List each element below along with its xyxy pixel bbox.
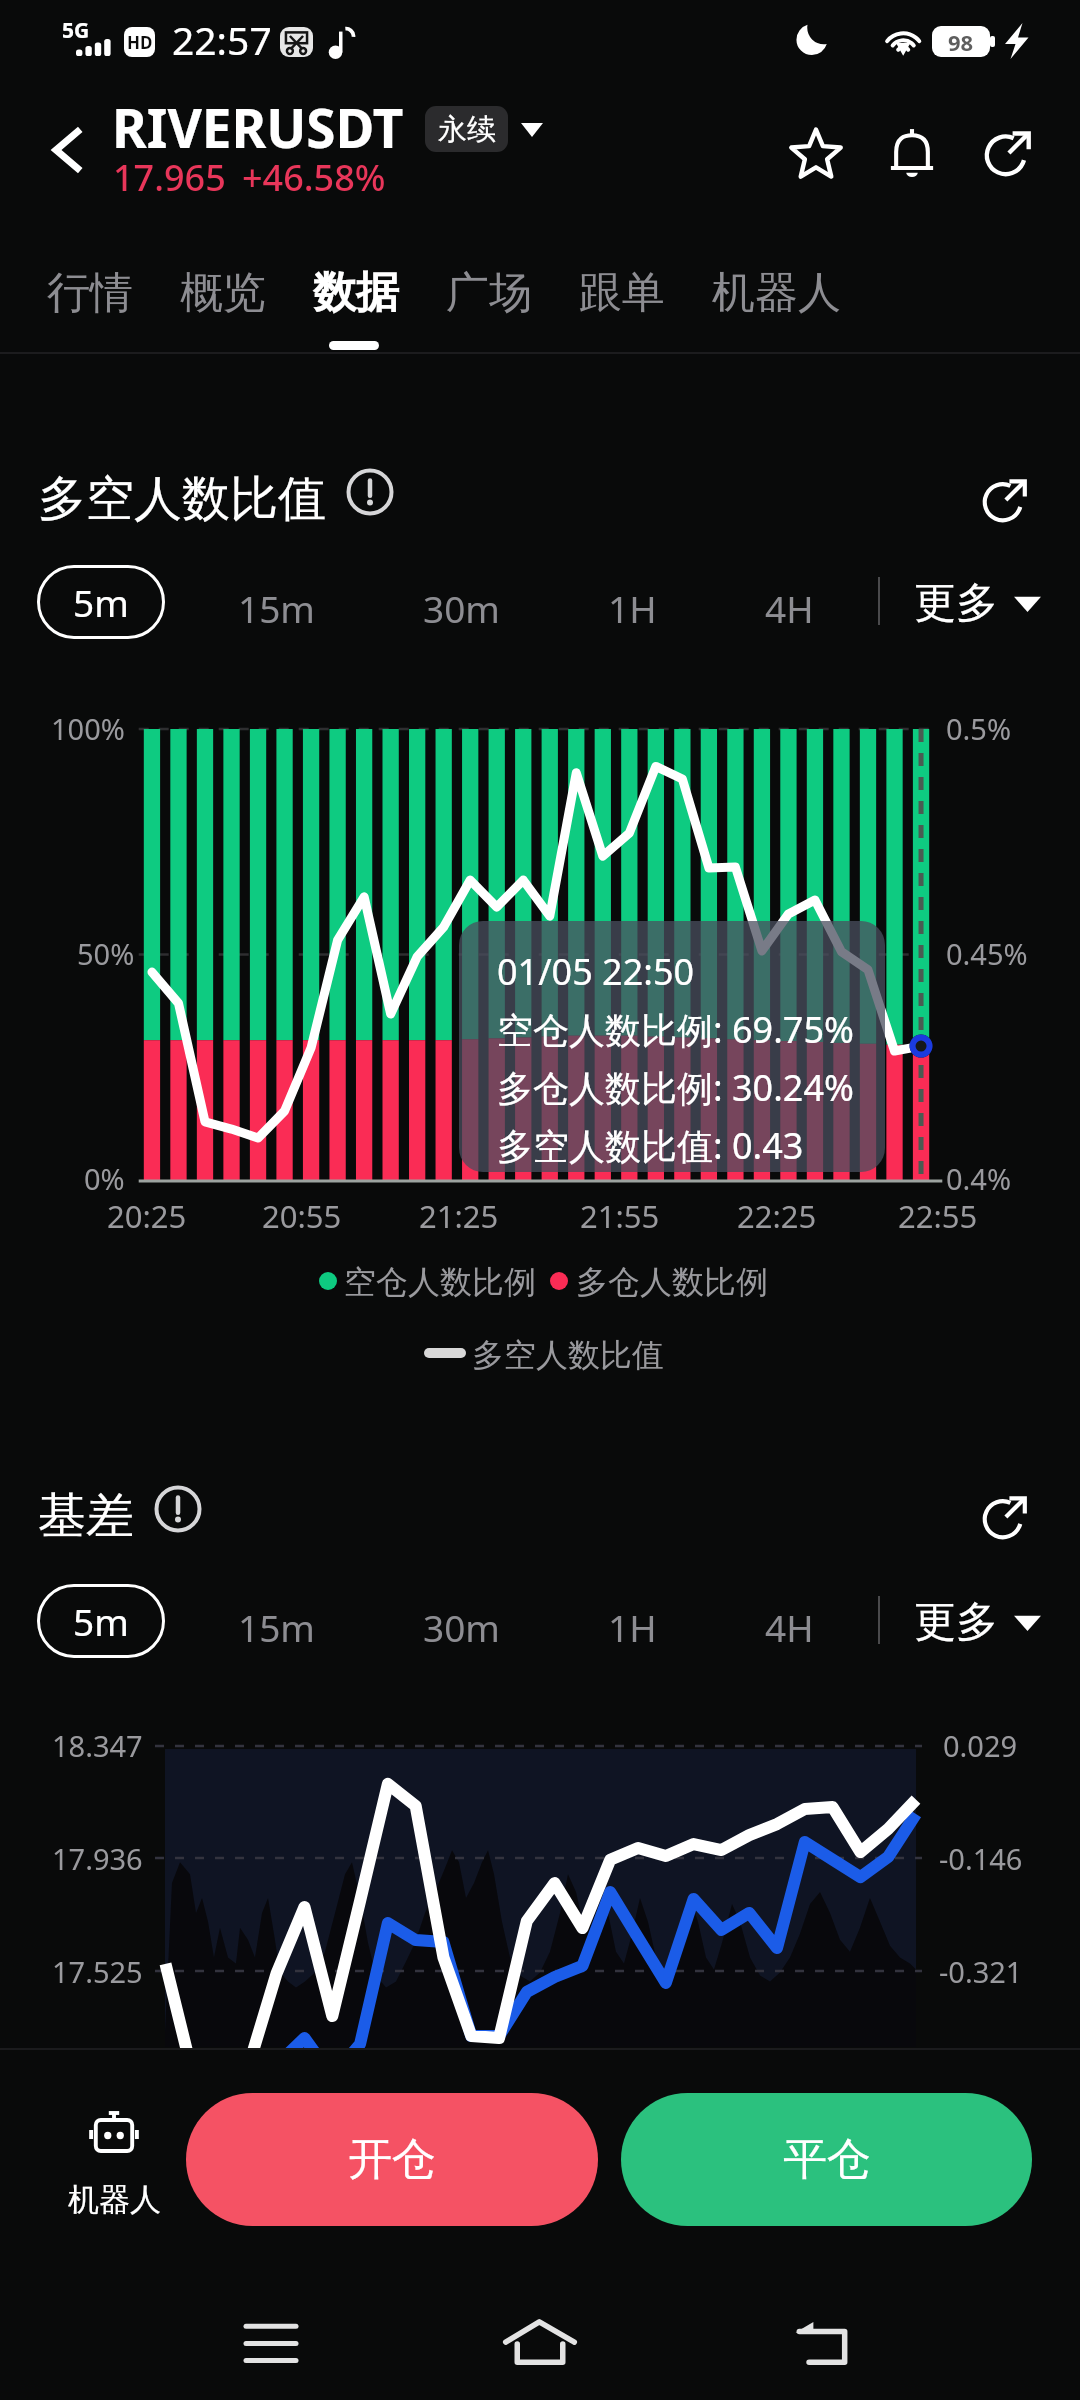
button[interactable]: 平仓 xyxy=(621,2093,1032,2226)
button[interactable]: 数据 xyxy=(299,258,413,328)
button[interactable]: 5m xyxy=(37,565,165,639)
staticText: 平仓 xyxy=(783,2132,871,2187)
staticText: 20:55 xyxy=(262,1195,342,1237)
staticText: 20:25 xyxy=(107,1195,187,1237)
staticText: 30m xyxy=(423,1602,500,1652)
button[interactable]: 4H xyxy=(753,1594,826,1660)
button[interactable]: 30m xyxy=(411,575,512,641)
staticText: 空仓人数比例 xyxy=(344,1262,536,1302)
button[interactable]: 跟单 xyxy=(565,258,679,328)
staticText: 行情 xyxy=(47,266,133,320)
staticText: 17.936 xyxy=(52,1839,143,1878)
button[interactable]: 30m xyxy=(411,1594,512,1660)
staticText: +46.58% xyxy=(242,153,386,202)
staticText: 0% xyxy=(84,1159,125,1198)
staticText: 21:25 xyxy=(419,1195,499,1237)
staticText: 15m xyxy=(238,1602,315,1652)
staticText: 21:55 xyxy=(580,1195,660,1237)
button[interactable]: 5m xyxy=(37,1584,165,1658)
button[interactable]: Select contract xyxy=(511,109,553,151)
staticText: 4H xyxy=(765,583,814,633)
staticText: 0.4% xyxy=(946,1159,1012,1198)
staticText: 5m xyxy=(73,577,129,627)
staticText: RIVERUSDT xyxy=(112,91,404,163)
staticText: 22:25 xyxy=(737,1195,817,1237)
button[interactable]: 广场 xyxy=(432,258,546,328)
staticText: 18.347 xyxy=(52,1726,143,1765)
button[interactable]: 永续 xyxy=(425,106,508,152)
staticText: 50% xyxy=(77,934,135,973)
staticText: 98 xyxy=(948,27,974,57)
button[interactable]: 概览 xyxy=(166,258,280,328)
button[interactable]: Expand chart xyxy=(972,1484,1038,1550)
staticText: 5G xyxy=(62,16,90,45)
staticText: 0.5% xyxy=(946,709,1012,748)
button[interactable]: 行情 xyxy=(33,258,147,328)
button[interactable]: 开仓 xyxy=(186,2093,598,2226)
staticText: 22:55 xyxy=(898,1195,978,1237)
staticText: 更多 xyxy=(914,1596,998,1649)
staticText: 1H xyxy=(608,583,657,633)
staticText: 广场 xyxy=(446,266,532,320)
button[interactable]: 更多 xyxy=(902,1588,1053,1657)
staticText: HD xyxy=(127,31,153,54)
button[interactable]: Price alert xyxy=(864,105,960,201)
staticText: -0.146 xyxy=(939,1839,1023,1878)
staticText: 永续 xyxy=(438,111,496,148)
button[interactable]: Back xyxy=(762,2293,882,2393)
button[interactable]: 4H xyxy=(753,575,826,641)
button[interactable]: Info xyxy=(152,1483,204,1535)
staticText: 数据 xyxy=(313,266,399,320)
staticText: 多空人数比值: 0.43 xyxy=(497,1121,804,1170)
button[interactable]: Recent apps xyxy=(211,2293,331,2393)
staticText: 跟单 xyxy=(579,266,665,320)
staticText: 空仓人数比例: 69.75% xyxy=(497,1005,854,1054)
staticText: 15m xyxy=(238,583,315,633)
staticText: 多仓人数比例: 30.24% xyxy=(497,1063,854,1112)
button[interactable]: 更多 xyxy=(902,569,1053,638)
staticText: 0.45% xyxy=(946,934,1028,973)
staticText: 概览 xyxy=(180,266,266,320)
button[interactable]: 机器人 xyxy=(698,258,855,328)
button[interactable]: 机器人 xyxy=(57,2104,171,2225)
staticText: 17.965 xyxy=(113,153,226,202)
staticText: 机器人 xyxy=(68,2180,161,2219)
button[interactable]: 15m xyxy=(226,575,327,641)
staticText: 01/05 22:50 xyxy=(497,947,695,996)
button[interactable]: 1H xyxy=(596,575,669,641)
button[interactable]: Expand chart xyxy=(972,467,1038,533)
staticText: 多空人数比值 xyxy=(472,1335,664,1375)
staticText: 0.029 xyxy=(943,1726,1018,1765)
button[interactable]: 1H xyxy=(596,1594,669,1660)
staticText: 更多 xyxy=(914,577,998,630)
button[interactable]: 15m xyxy=(226,1594,327,1660)
staticText: 多仓人数比例 xyxy=(576,1262,768,1302)
staticText: 机器人 xyxy=(712,266,841,320)
staticText: 1H xyxy=(608,1602,657,1652)
button[interactable]: Share xyxy=(960,105,1056,201)
staticText: 基差 xyxy=(38,1486,134,1546)
staticText: 多空人数比值 xyxy=(38,469,326,529)
button[interactable]: Favorite xyxy=(768,105,864,201)
button[interactable]: Info xyxy=(344,466,396,518)
button[interactable]: Home xyxy=(480,2293,600,2393)
staticText: 17.525 xyxy=(52,1952,143,1991)
staticText: 30m xyxy=(423,583,500,633)
staticText: 22:57 xyxy=(172,13,272,66)
staticText: 4H xyxy=(765,1602,814,1652)
staticText: 100% xyxy=(51,709,125,748)
staticText: -0.321 xyxy=(939,1952,1023,1991)
staticText: 开仓 xyxy=(348,2132,436,2187)
button[interactable]: Back xyxy=(22,104,114,196)
staticText: 5m xyxy=(73,1596,129,1646)
